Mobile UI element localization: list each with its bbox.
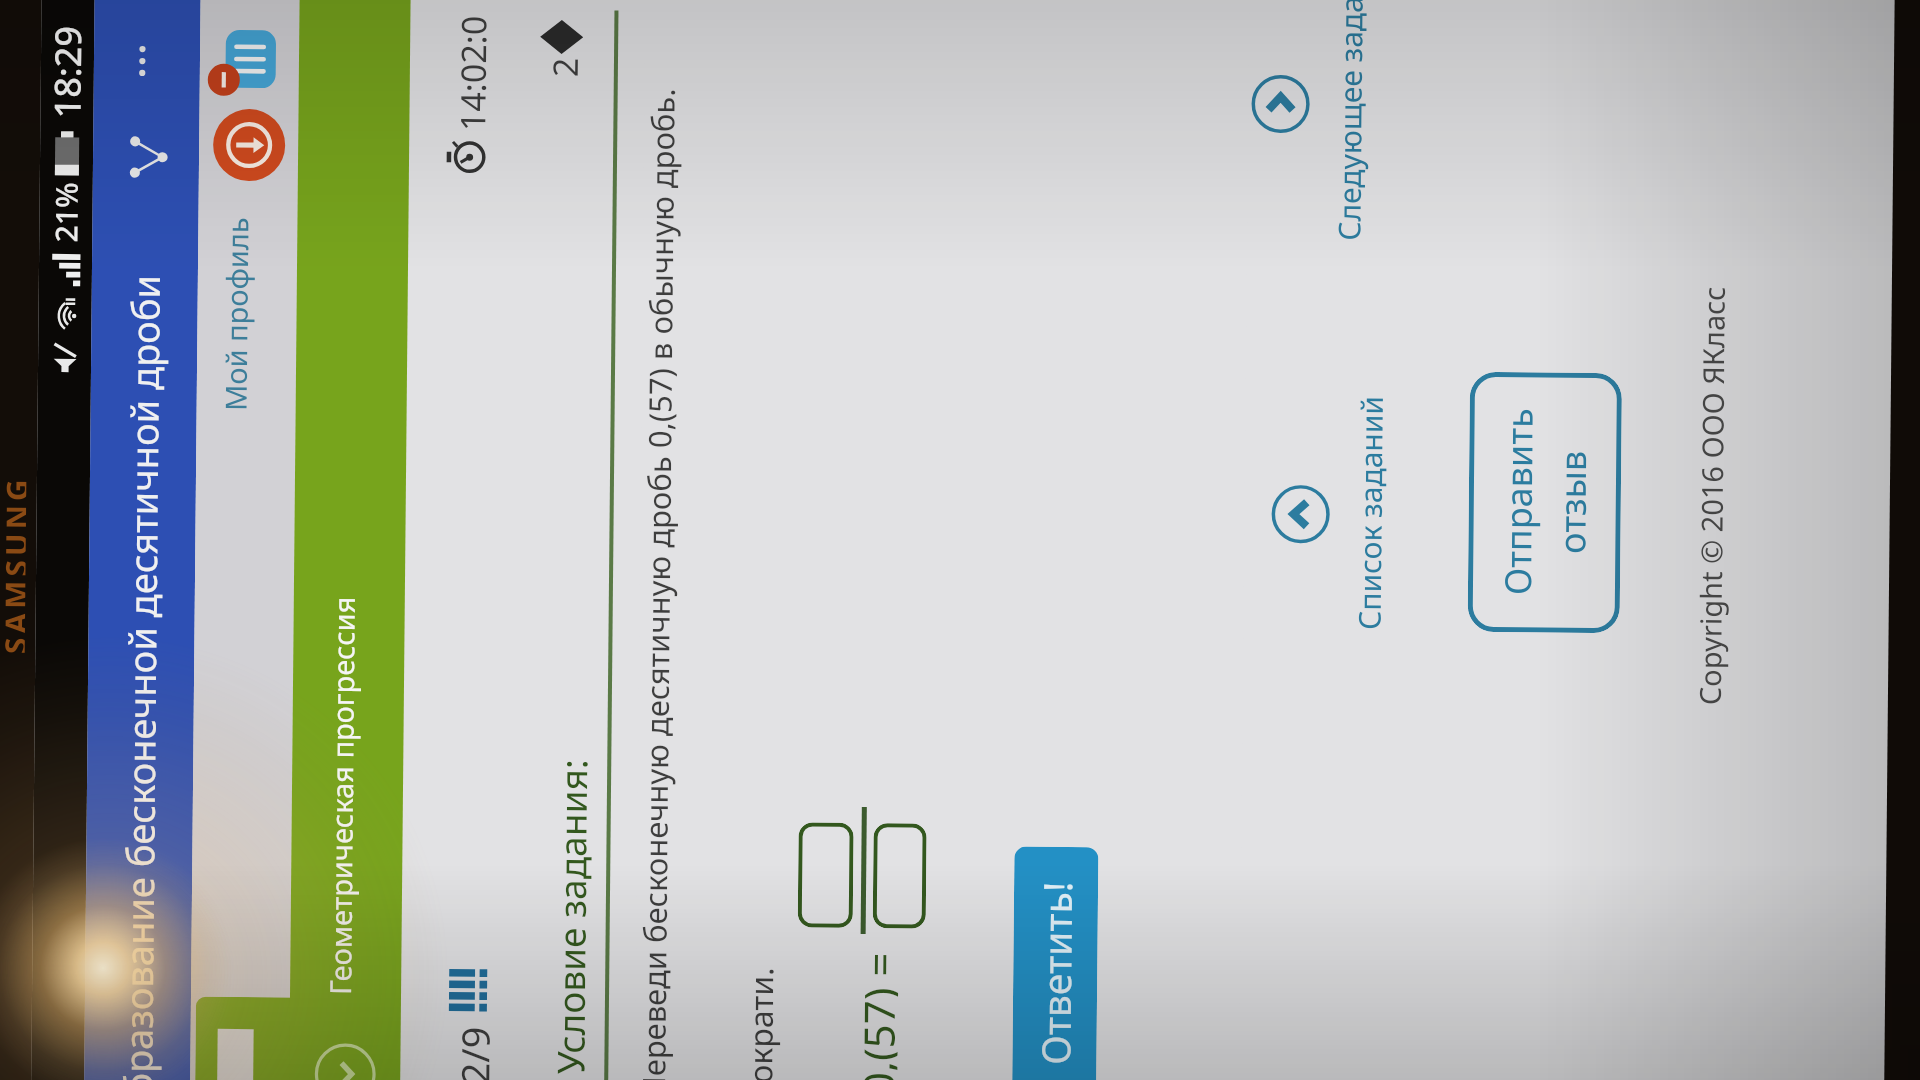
staticText: Copyright © 2016 ООО ЯКласс <box>1690 286 1733 705</box>
staticText: 18:29 <box>42 25 92 119</box>
button[interactable]: Collapse <box>313 1042 377 1080</box>
staticText: 2 <box>542 57 584 77</box>
staticText: 21% <box>45 182 87 242</box>
staticText: Сократи. <box>738 967 781 1080</box>
staticText: SAMSUNG <box>0 475 26 654</box>
staticText: Следующее задание <box>1328 0 1372 241</box>
staticText: Преобразование бесконечной десятичной др… <box>110 274 171 1080</box>
button[interactable]: Следующее задание <box>1324 0 1376 312</box>
button[interactable]: Ответить! <box>1012 846 1098 1080</box>
staticText: Условие задания: <box>544 759 593 1074</box>
button[interactable]: YaKlass home <box>193 997 295 1080</box>
button[interactable]: Отправить отзыв <box>1467 372 1622 633</box>
button[interactable]: Список заданий <box>1344 293 1396 733</box>
staticText: Мой профиль <box>216 217 256 411</box>
button[interactable]: Следующее задание <box>1250 74 1311 134</box>
staticText: Переведи бесконечную десятичную дробь 0,… <box>632 88 684 1080</box>
button[interactable]: Tabs <box>208 17 292 101</box>
button[interactable]: Список заданий <box>1270 484 1331 544</box>
staticText: 2/9 <box>448 1026 495 1080</box>
button[interactable]: Downloads <box>207 103 292 187</box>
button[interactable]: Share <box>111 122 181 192</box>
staticText: Отправить отзыв <box>1493 408 1598 596</box>
staticText: 14:02:00 <box>449 1 492 131</box>
staticText: Ответить! <box>1028 881 1083 1065</box>
button[interactable]: More options <box>112 26 182 96</box>
button[interactable] <box>798 822 854 928</box>
staticText: Список заданий <box>1349 396 1392 630</box>
button[interactable] <box>873 823 927 929</box>
staticText: 0,(57) = <box>849 952 898 1080</box>
staticText: Геометрическая прогрессия <box>320 596 363 995</box>
